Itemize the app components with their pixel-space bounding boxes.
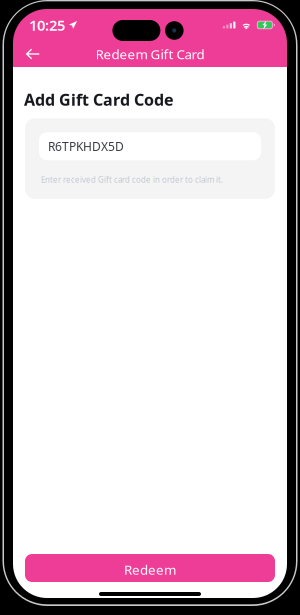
staticText: 10:25 [29,15,65,35]
staticText: Add Gift Card Code [24,89,174,110]
button[interactable]: Redeem [25,554,275,582]
staticText: R6TPKHDX5D [48,138,124,154]
staticText: Enter received Gift card code in order t… [41,174,223,185]
button[interactable]: Back [19,41,47,67]
staticText: Redeem Gift Card [95,45,204,63]
staticText: Redeem [124,561,176,578]
